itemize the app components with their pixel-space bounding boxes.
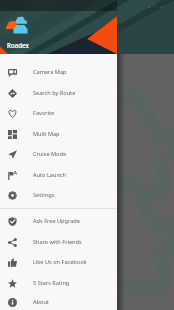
button[interactable]: Share with Friends	[0, 232, 117, 252]
button[interactable]: Cruise Mode	[0, 144, 117, 164]
button[interactable]: Multi Map	[0, 124, 117, 144]
staticText: Settings	[33, 191, 55, 199]
button[interactable]: Settings	[0, 185, 117, 205]
staticText: 10:39 p.m.	[144, 2, 172, 10]
button[interactable]: Ads Free Upgrade	[0, 211, 117, 231]
staticText: Ads Free Upgrade	[33, 217, 80, 225]
button[interactable]: 5 Stars Rating	[0, 273, 117, 293]
staticText: Multi Map	[33, 130, 60, 138]
staticText: Share with Friends	[33, 238, 82, 246]
staticText: Favorite	[33, 109, 55, 117]
staticText: Camera Map	[33, 68, 67, 76]
staticText: 5 Stars Rating	[33, 279, 70, 287]
staticText: Cruise Mode	[33, 150, 67, 158]
button[interactable]: Camera Map	[0, 62, 117, 82]
button[interactable]: Favorite	[0, 103, 117, 123]
button[interactable]: About	[0, 292, 117, 310]
staticText: Auto Launch	[33, 171, 67, 179]
staticText: Search by Route	[33, 89, 76, 97]
button[interactable]: Like Us on Facebook	[0, 252, 117, 272]
staticText: Roadex	[7, 41, 29, 49]
staticText: About	[33, 298, 49, 306]
staticText: Like Us on Facebook	[33, 258, 87, 266]
button[interactable]: Auto Launch	[0, 165, 117, 185]
button[interactable]: Search by Route	[0, 83, 117, 103]
